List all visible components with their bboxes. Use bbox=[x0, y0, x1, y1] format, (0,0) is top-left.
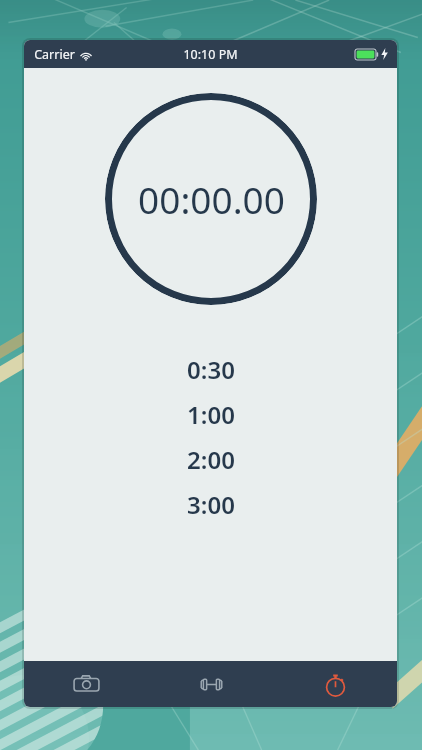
button[interactable]: 3:00 bbox=[24, 482, 397, 527]
staticText: 10:10 PM bbox=[183, 46, 238, 63]
button[interactable]: Workouts bbox=[149, 661, 273, 707]
staticText: Carrier bbox=[34, 46, 75, 63]
button[interactable]: Camera bbox=[24, 661, 149, 707]
button[interactable]: 0:30 bbox=[24, 347, 397, 392]
button[interactable]: 00:00.00 bbox=[105, 93, 317, 305]
staticText: 0:30 bbox=[187, 353, 235, 386]
staticText: 2:00 bbox=[187, 443, 235, 476]
staticText: 1:00 bbox=[187, 398, 235, 431]
button[interactable]: 2:00 bbox=[24, 437, 397, 482]
staticText: 00:00.00 bbox=[138, 174, 285, 224]
staticText: 3:00 bbox=[187, 488, 235, 521]
button[interactable]: Timer bbox=[273, 661, 397, 707]
button[interactable]: 1:00 bbox=[24, 392, 397, 437]
